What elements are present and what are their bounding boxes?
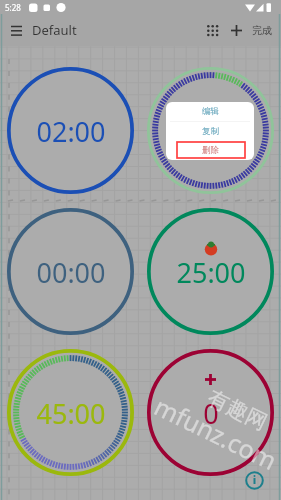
button[interactable]: 02:00 [7, 67, 134, 194]
button[interactable]: Add timer [223, 17, 249, 43]
staticText: Default [32, 21, 77, 39]
staticText: 复制 [202, 126, 219, 137]
button[interactable] [147, 67, 274, 194]
staticText: 45:00 [36, 395, 106, 432]
button[interactable]: 25:00 [147, 208, 274, 335]
staticText: 完成 [252, 24, 272, 37]
staticText: 删除 [202, 145, 219, 156]
button[interactable]: Grid layout [199, 17, 225, 43]
button[interactable]: 45:00 [7, 349, 134, 476]
staticText: 02:00 [36, 113, 106, 150]
staticText: 编辑 [202, 106, 219, 117]
staticText: 有趣网 [203, 384, 271, 435]
button[interactable]: 编辑 [166, 102, 254, 121]
button[interactable]: 00:00 [7, 208, 134, 335]
staticText: 0 [203, 395, 219, 432]
button[interactable]: 0 [147, 349, 274, 476]
button[interactable]: 删除 [166, 141, 254, 160]
staticText: 00:00 [36, 254, 106, 291]
staticText: 5:28 [5, 2, 21, 13]
staticText: mfunz.com [149, 389, 281, 477]
button[interactable]: Navigation menu [3, 17, 29, 43]
button[interactable]: 复制 [166, 122, 254, 141]
button[interactable]: 完成 [247, 14, 277, 46]
staticText: 25:00 [176, 254, 246, 291]
